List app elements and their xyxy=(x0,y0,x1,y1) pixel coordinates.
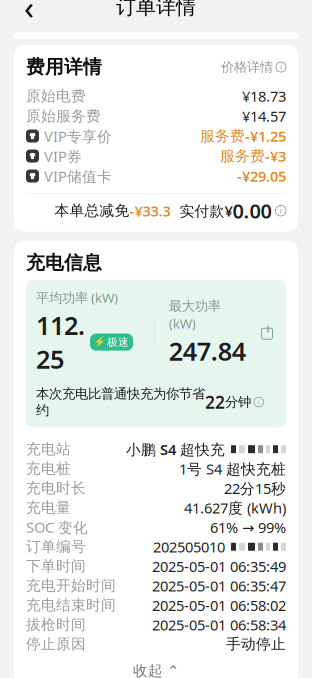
staticText: 充电结束时间 xyxy=(26,596,116,614)
staticText: 实付款¥ xyxy=(179,201,232,220)
staticText: 拔枪时间 xyxy=(26,616,86,634)
staticText: 充电时长 xyxy=(26,479,86,497)
staticText: 61% → 99% xyxy=(210,517,286,537)
staticText: VIP专享价 xyxy=(44,126,112,146)
staticText: 原始电费 xyxy=(26,87,86,105)
staticText: 收起 xyxy=(133,662,163,678)
staticText: i xyxy=(258,398,260,407)
staticText: 247.84 xyxy=(169,334,246,368)
staticText: 41.627度 (kWh) xyxy=(184,498,286,517)
staticText: 极速 xyxy=(107,335,129,349)
staticText: 费用详情 xyxy=(26,56,102,78)
staticText: VIP储值卡 xyxy=(44,166,112,186)
staticText: -¥1.25 xyxy=(245,126,286,146)
staticText: SOC 变化 xyxy=(26,517,88,537)
staticText: 充电开始时间 xyxy=(26,577,116,595)
staticText: 充电桩 xyxy=(26,460,71,478)
staticText: 0.00 xyxy=(232,197,271,224)
staticText: 本单总减免 xyxy=(54,202,129,220)
staticText: -¥33.3 xyxy=(129,201,170,220)
staticText: 服务费 xyxy=(200,127,245,145)
staticText: 充电信息 xyxy=(26,251,102,274)
button[interactable]: 分享 xyxy=(258,323,276,341)
staticText: 2025-05-01 06:58:34 xyxy=(152,615,286,634)
staticText: 下单时间 xyxy=(26,557,86,575)
staticText: -¥3 xyxy=(265,146,286,166)
staticText: 2025-05-01 06:35:49 xyxy=(152,556,286,576)
staticText: 22分15秒 xyxy=(224,478,286,498)
staticText: 2025-05-01 06:58:02 xyxy=(152,595,286,615)
staticText: 112.25 xyxy=(36,308,85,376)
staticText: 充电站 xyxy=(26,440,71,458)
staticText: ⌃ xyxy=(167,663,179,678)
staticText: 分钟 xyxy=(225,394,251,410)
staticText: 本次充电比普通快充为你节省约 xyxy=(36,386,205,418)
staticText: i xyxy=(280,62,282,72)
staticText: 充电量 xyxy=(26,499,71,517)
staticText: 原始服务费 xyxy=(26,107,101,125)
staticText: ¥14.57 xyxy=(242,106,286,126)
staticText: 订单详情 xyxy=(116,0,196,19)
staticText: 手动停止 xyxy=(226,635,286,653)
staticText: 最大功率 (kW) xyxy=(169,297,221,332)
staticText: 22 xyxy=(205,391,225,414)
staticText: 价格详情 xyxy=(221,59,273,75)
staticText: -¥29.05 xyxy=(237,166,286,186)
staticText: ¥18.73 xyxy=(242,86,286,106)
staticText: VIP券 xyxy=(44,146,82,166)
staticText: 小鹏 S4 超快充 xyxy=(126,439,225,459)
staticText: ⚡ xyxy=(94,337,106,347)
button[interactable]: 价格详情 xyxy=(221,59,286,75)
staticText: 2025-05-01 06:35:47 xyxy=(152,576,286,595)
button[interactable]: 返回 xyxy=(12,0,46,24)
staticText: 停止原因 xyxy=(26,635,86,653)
staticText: i xyxy=(280,205,282,216)
staticText: 1号 S4 超快充桩 xyxy=(179,459,286,478)
staticText: ‹ xyxy=(24,0,34,28)
staticText: 202505010 xyxy=(153,537,225,556)
button[interactable]: 收起 xyxy=(26,662,286,678)
staticText: 服务费 xyxy=(220,147,265,165)
staticText: 平均功率 (kW) xyxy=(36,289,118,306)
staticText: 订单编号 xyxy=(26,538,86,556)
